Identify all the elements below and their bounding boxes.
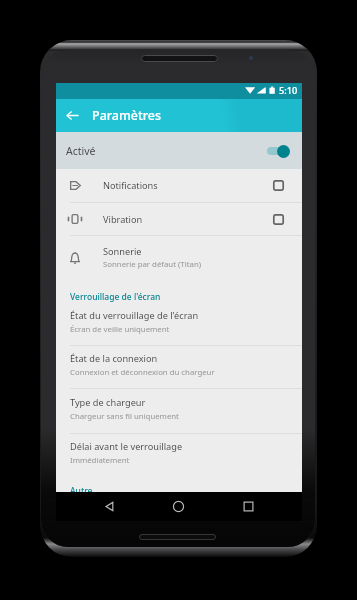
button[interactable]: Type de chargeur	[56, 389, 302, 433]
button[interactable]: Back	[56, 99, 89, 132]
staticText: Verrouillage de l'écran	[70, 291, 161, 303]
button[interactable]: État de la connexion	[56, 346, 302, 388]
staticText: Délai avant le verrouillage	[70, 440, 183, 453]
staticText: Activé	[66, 144, 96, 158]
staticText: Notifications	[103, 179, 158, 192]
button[interactable]: Activé	[56, 132, 302, 169]
button[interactable]: Notifications	[56, 169, 302, 202]
staticText: 5:10	[279, 84, 298, 97]
staticText: Type de chargeur	[70, 396, 146, 409]
button[interactable]: État du verrouillage de l'écran	[56, 303, 302, 345]
button[interactable]: Délai avant le verrouillage	[56, 434, 302, 476]
button[interactable]: Sonnerie	[56, 236, 302, 279]
button[interactable]: Recent apps	[234, 492, 263, 521]
staticText: Écran de veille uniquement	[70, 324, 170, 335]
staticText: Immédiatement	[70, 455, 130, 466]
staticText: État du verrouillage de l'écran	[70, 309, 199, 322]
staticText: Sonnerie	[103, 245, 142, 258]
staticText: État de la connexion	[70, 352, 158, 365]
button[interactable]: Back	[95, 492, 124, 521]
button[interactable]: Vibration	[56, 203, 302, 235]
staticText: Vibration	[103, 213, 143, 226]
staticText: Sonnerie par défaut (Titan)	[103, 259, 202, 270]
staticText: Chargeur sans fil uniquement	[70, 411, 179, 422]
button[interactable]: Home	[164, 492, 193, 521]
staticText: Connexion et déconnexion du chargeur	[70, 367, 215, 378]
staticText: Paramètres	[92, 107, 162, 124]
staticText: Autre	[70, 485, 93, 492]
